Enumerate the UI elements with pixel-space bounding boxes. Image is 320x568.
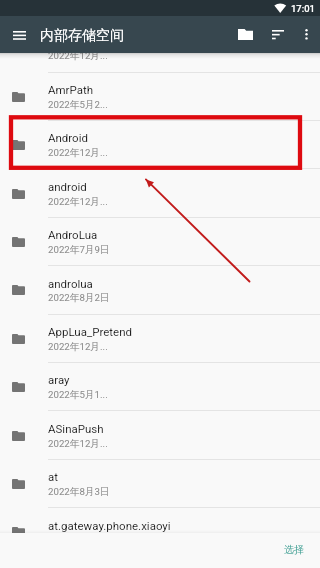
staticText: 2022年12月... <box>48 341 108 353</box>
staticText: 2022年12月... <box>48 147 108 159</box>
staticText: 2022年5月1... <box>48 389 108 401</box>
staticText: 17:01 <box>291 3 315 14</box>
button[interactable] <box>0 460 320 508</box>
staticText: at.gateway.phone.xiaoyi <box>48 519 171 532</box>
staticText: 2022年8月2日 <box>48 292 110 304</box>
staticText: ASinaPush <box>48 422 104 435</box>
button[interactable]: Sort <box>264 20 291 49</box>
button[interactable] <box>0 411 320 459</box>
button[interactable] <box>0 121 320 169</box>
staticText: 2022年7月9日 <box>48 244 110 256</box>
button[interactable] <box>0 266 320 314</box>
staticText: 2022年12月... <box>48 438 108 450</box>
button[interactable]: Open navigation drawer <box>6 22 32 49</box>
staticText: 选择 <box>284 543 304 556</box>
staticText: AmrPath <box>48 83 94 96</box>
staticText: 内部存储空间 <box>40 27 124 45</box>
button[interactable] <box>0 73 320 121</box>
staticText: 2022年8月3日 <box>48 486 110 498</box>
button[interactable] <box>0 363 320 411</box>
staticText: 2022年12月... <box>48 196 108 208</box>
staticText: at <box>48 470 59 483</box>
button[interactable]: 选择 <box>268 537 320 562</box>
staticText: AliveJob <box>48 35 93 48</box>
button[interactable] <box>0 24 320 72</box>
staticText: android <box>48 180 87 193</box>
staticText: 2022年12月... <box>48 50 108 62</box>
button[interactable] <box>0 315 320 363</box>
button[interactable] <box>0 169 320 217</box>
staticText: Android <box>48 131 88 144</box>
button[interactable]: New folder <box>232 20 259 49</box>
staticText: androlua <box>48 277 93 290</box>
staticText: aray <box>48 373 70 386</box>
staticText: AppLua_Pretend <box>48 325 132 338</box>
button[interactable]: More options <box>294 20 318 49</box>
button[interactable] <box>0 508 320 533</box>
button[interactable] <box>0 218 320 266</box>
staticText: 2022年5月2... <box>48 99 108 111</box>
staticText: AndroLua <box>48 228 98 241</box>
